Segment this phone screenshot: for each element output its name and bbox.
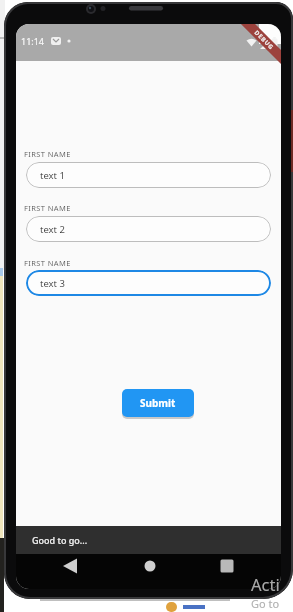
button[interactable] <box>52 556 74 576</box>
staticText: Go to <box>251 596 280 611</box>
button[interactable]: text 2 <box>26 216 271 242</box>
staticText: text 3 <box>40 277 65 290</box>
staticText: text 2 <box>40 223 65 236</box>
button[interactable]: text 3 <box>26 270 271 296</box>
button[interactable] <box>139 556 161 576</box>
button[interactable]: Submit <box>122 389 194 417</box>
button[interactable] <box>214 556 236 576</box>
staticText: 11:14 <box>21 35 45 47</box>
staticText: Good to go... <box>32 534 88 546</box>
staticText: FIRST NAME <box>24 258 71 268</box>
staticText: DEBUG <box>253 29 276 52</box>
staticText: Submit <box>140 396 176 410</box>
staticText: text 1 <box>40 169 65 182</box>
staticText: FIRST NAME <box>24 203 71 213</box>
button[interactable]: text 1 <box>26 162 271 188</box>
staticText: FIRST NAME <box>24 149 71 159</box>
staticText: Acti <box>251 573 280 595</box>
